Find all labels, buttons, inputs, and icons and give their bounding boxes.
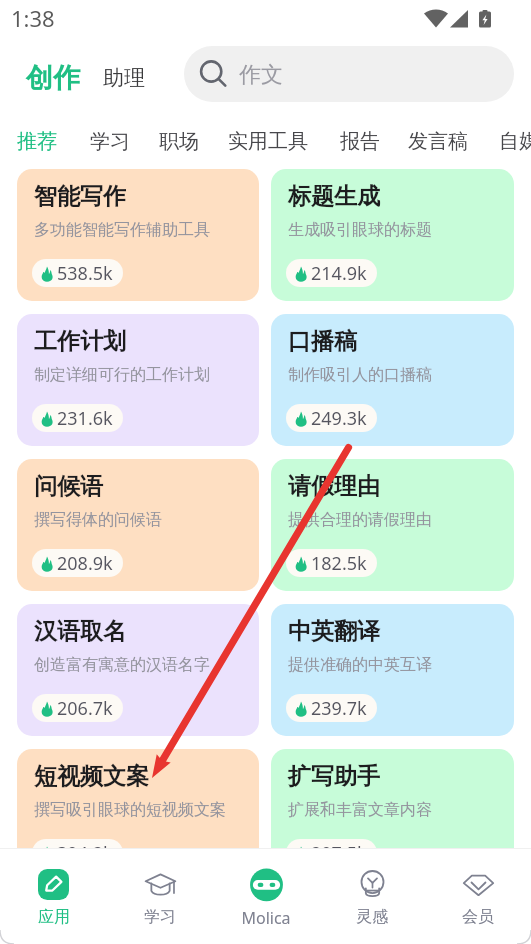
staticText: 扩写助手 [288, 762, 380, 791]
staticText: 249.3k [311, 406, 367, 431]
staticText: 多功能智能写作辅助工具 [34, 220, 210, 240]
button[interactable]: 职场 [159, 129, 199, 154]
staticText: 制作吸引人的口播稿 [288, 365, 432, 385]
staticText: 应用 [38, 907, 70, 927]
staticText: 短视频文案 [34, 762, 149, 791]
button[interactable]: 应用 [0, 849, 107, 944]
staticText: 作文 [239, 61, 283, 89]
staticText: 生成吸引眼球的标题 [288, 220, 432, 240]
button[interactable]: 汉语取名 [17, 604, 259, 736]
staticText: 208.9k [57, 551, 113, 576]
staticText: 请假理由 [288, 472, 380, 501]
staticText: 汉语取名 [34, 617, 126, 646]
staticText: 1:38 [11, 3, 55, 33]
button[interactable]: 学习 [107, 849, 213, 944]
staticText: 扩展和丰富文章内容 [288, 800, 432, 820]
button[interactable]: 短视频文案 [17, 749, 259, 881]
button[interactable]: 会员 [425, 849, 531, 944]
staticText: 灵感 [356, 907, 388, 927]
staticText: 538.5k [57, 261, 113, 286]
button[interactable]: 口播稿 [271, 314, 514, 446]
staticText: 182.5k [311, 551, 367, 576]
button[interactable]: 自媒体 [499, 129, 531, 154]
button[interactable]: 标题生成 [271, 169, 514, 301]
button[interactable]: 学习 [90, 129, 130, 154]
button[interactable]: 发言稿 [408, 129, 468, 154]
staticText: 239.7k [311, 696, 367, 721]
button[interactable]: 工作计划 [17, 314, 259, 446]
staticText: 问候语 [34, 472, 103, 501]
staticText: 214.9k [311, 261, 367, 286]
button[interactable]: 问候语 [17, 459, 259, 591]
staticText: 206.7k [57, 696, 113, 721]
staticText: Molica [241, 907, 291, 929]
staticText: 学习 [144, 907, 176, 927]
staticText: 制定详细可行的工作计划 [34, 365, 210, 385]
button[interactable]: 助理 [103, 65, 145, 91]
button[interactable]: 作文 [184, 46, 514, 102]
button[interactable]: 实用工具 [228, 129, 308, 154]
staticText: 创造富有寓意的汉语名字 [34, 655, 210, 675]
button[interactable]: 创作 [26, 61, 80, 95]
staticText: 231.6k [57, 406, 113, 431]
button[interactable]: 智能写作 [17, 169, 259, 301]
staticText: 智能写作 [34, 182, 126, 211]
staticText: 中英翻译 [288, 617, 380, 646]
button[interactable]: 灵感 [319, 849, 425, 944]
staticText: 工作计划 [34, 327, 126, 356]
staticText: 会员 [462, 907, 494, 927]
button[interactable]: 请假理由 [271, 459, 514, 591]
staticText: 394.2k [57, 841, 113, 866]
staticText: 口播稿 [288, 327, 357, 356]
button[interactable]: 报告 [340, 129, 380, 154]
staticText: 标题生成 [288, 182, 380, 211]
staticText: 撰写得体的问候语 [34, 510, 162, 530]
button[interactable]: Molica [213, 849, 319, 944]
button[interactable]: 扩写助手 [271, 749, 514, 881]
staticText: 撰写吸引眼球的短视频文案 [34, 800, 226, 820]
staticText: 207.5k [311, 841, 367, 866]
staticText: 提供合理的请假理由 [288, 510, 432, 530]
staticText: 提供准确的中英互译 [288, 655, 432, 675]
button[interactable]: 推荐 [17, 129, 57, 154]
button[interactable]: 中英翻译 [271, 604, 514, 736]
